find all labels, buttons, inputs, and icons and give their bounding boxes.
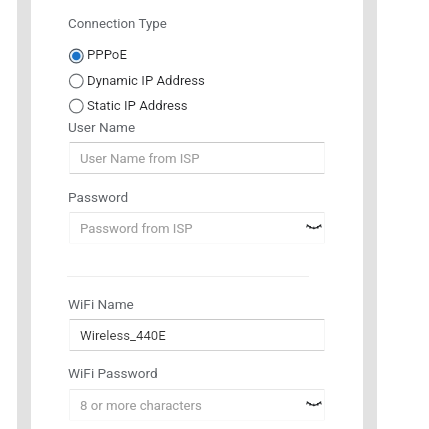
- button[interactable]: Wireless_440E: [69, 319, 325, 351]
- staticText: WiFi Name: [68, 296, 134, 312]
- button[interactable]: Password from ISP: [69, 212, 325, 244]
- button[interactable]: User Name from ISP: [69, 142, 325, 174]
- staticText: Password: [68, 189, 129, 205]
- other: Show password: [305, 395, 323, 413]
- staticText: Wireless_440E: [80, 328, 166, 343]
- button[interactable]: 8 or more characters: [69, 389, 325, 421]
- staticText: Static IP Address: [87, 98, 188, 113]
- staticText: 8 or more characters: [80, 398, 202, 413]
- staticText: Connection Type: [68, 16, 167, 32]
- staticText: WiFi Password: [68, 365, 158, 381]
- staticText: PPPoE: [87, 47, 127, 62]
- other: Show password: [305, 218, 323, 236]
- staticText: Dynamic IP Address: [87, 73, 205, 88]
- staticText: User Name from ISP: [80, 151, 200, 166]
- button[interactable]: Dynamic IP Address: [65, 70, 205, 92]
- button[interactable]: PPPoE: [65, 45, 127, 67]
- staticText: User Name: [68, 119, 136, 135]
- staticText: Password from ISP: [80, 221, 193, 236]
- button[interactable]: Static IP Address: [65, 95, 188, 117]
